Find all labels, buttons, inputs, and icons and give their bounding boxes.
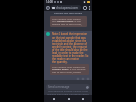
button[interactable]: Dislike xyxy=(86,77,89,80)
button[interactable]: chat.openai.com xyxy=(51,5,81,10)
staticText: Note: I based the impression on the text… xyxy=(52,32,89,63)
button[interactable]: Home xyxy=(63,95,74,102)
staticText: This content may violate our content pol… xyxy=(52,17,85,26)
button[interactable]: Copy xyxy=(76,77,79,80)
staticText: 14:08 xyxy=(46,0,53,4)
staticText: Free Research Preview. ChatGPT may produ… xyxy=(46,90,90,95)
staticText: This content may violate our content pol… xyxy=(52,65,87,74)
button[interactable]: Recents xyxy=(77,95,88,102)
staticText: Describe Skin sales Google xyxy=(44,12,92,15)
button[interactable]: Send xyxy=(85,85,89,89)
button[interactable]: Like xyxy=(81,77,84,80)
button[interactable]: Send a message xyxy=(46,84,90,90)
button[interactable]: Tabs xyxy=(82,5,87,10)
button[interactable]: Account xyxy=(45,5,50,10)
staticText: Send a message xyxy=(48,85,70,89)
staticText: chat.openai.com xyxy=(56,6,78,10)
button[interactable]: More options xyxy=(87,6,91,10)
button[interactable]: Back xyxy=(48,95,59,102)
